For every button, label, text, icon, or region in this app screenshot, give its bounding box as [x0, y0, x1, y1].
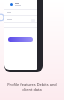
button[interactable] — [8, 37, 33, 42]
staticText: client data — [2, 87, 62, 92]
button[interactable] — [10, 3, 33, 6]
staticText: Profile features Debits and — [2, 82, 62, 87]
